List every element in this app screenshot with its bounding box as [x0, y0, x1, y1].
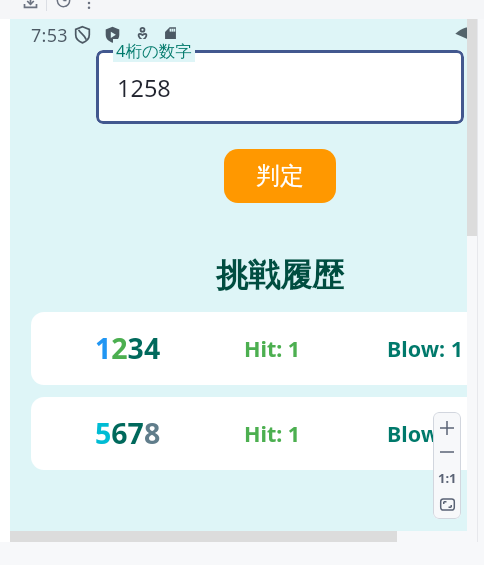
- button[interactable]: 1:1: [433, 464, 461, 492]
- button[interactable]: History: [56, 0, 71, 8]
- staticText: 判定: [256, 161, 304, 191]
- staticText: Hit: 1: [244, 334, 301, 363]
- staticText: 挑戦履歴: [216, 255, 344, 295]
- button[interactable]: 1234: [31, 312, 484, 385]
- button[interactable]: Zoom out: [433, 438, 461, 466]
- staticText: 7:53: [31, 23, 68, 48]
- button[interactable]: 判定: [224, 149, 336, 203]
- staticText: 5678: [95, 414, 161, 453]
- button[interactable]: Fit to screen: [433, 491, 461, 517]
- button[interactable]: Download: [23, 0, 38, 10]
- staticText: 1258: [117, 72, 171, 104]
- button[interactable]: Zoom in: [433, 412, 461, 444]
- staticText: Blow: 1: [387, 334, 464, 363]
- staticText: 4桁の数字: [116, 39, 192, 62]
- staticText: Blow: 1: [387, 419, 464, 448]
- staticText: 1234: [95, 329, 161, 368]
- button[interactable]: 1258: [96, 50, 464, 124]
- staticText: 1:1: [438, 469, 457, 487]
- button[interactable]: 5678: [31, 397, 484, 470]
- staticText: Hit: 1: [244, 419, 301, 448]
- button[interactable]: More options: [83, 0, 95, 9]
